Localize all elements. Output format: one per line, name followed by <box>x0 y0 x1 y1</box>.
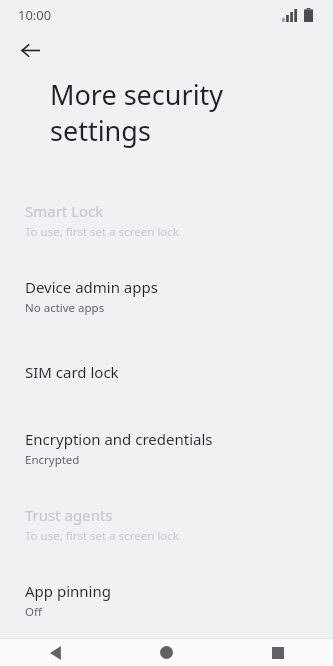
button[interactable]: Home <box>111 639 222 666</box>
button[interactable]: App pinning <box>0 562 333 638</box>
staticText: More security settings <box>50 76 293 149</box>
staticText: Off <box>25 604 42 620</box>
button[interactable]: Smart Lock <box>0 182 333 258</box>
staticText: Trust agents <box>25 505 113 525</box>
button[interactable]: Trust agents <box>0 486 333 562</box>
button[interactable]: Recent apps <box>222 639 333 666</box>
button[interactable]: Device admin apps <box>0 258 333 334</box>
staticText: Encrypted <box>25 452 80 468</box>
staticText: No active apps <box>25 300 105 316</box>
staticText: Smart Lock <box>25 201 104 221</box>
staticText: To use, first set a screen lock <box>25 528 179 544</box>
button[interactable]: Back <box>0 639 111 666</box>
button[interactable]: Encryption and credentials <box>0 410 333 486</box>
staticText: App pinning <box>25 581 111 601</box>
staticText: Encryption and credentials <box>25 429 213 449</box>
staticText: 10:00 <box>18 6 52 24</box>
button[interactable]: SIM card lock <box>0 334 333 410</box>
staticText: To use, first set a screen lock <box>25 224 179 240</box>
staticText: SIM card lock <box>25 362 119 382</box>
staticText: Device admin apps <box>25 277 158 297</box>
button[interactable]: Back <box>13 33 48 68</box>
